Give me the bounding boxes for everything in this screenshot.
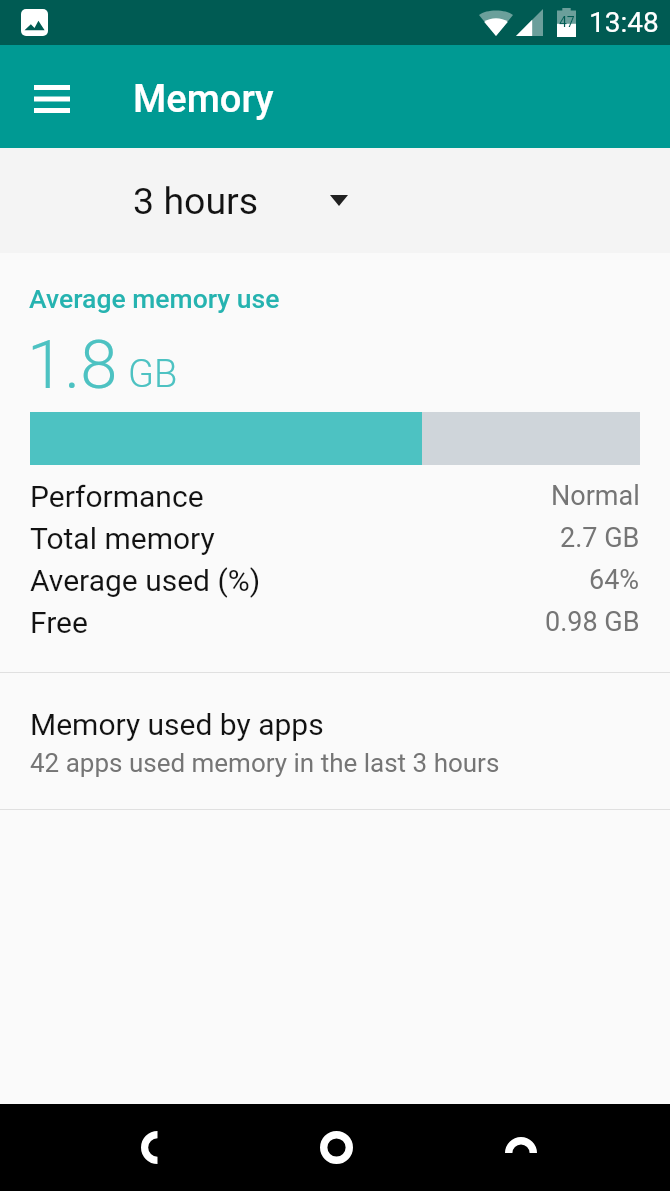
staticText: Normal (551, 480, 640, 512)
staticText: Average memory use (29, 283, 280, 314)
button[interactable]: Memory used by apps (0, 673, 670, 809)
staticText: Performance (30, 479, 204, 514)
staticText: 0.98 GB (545, 606, 640, 638)
staticText: GB (128, 352, 178, 397)
button[interactable]: Home (281, 1104, 391, 1191)
button[interactable]: 3 hours (0, 148, 670, 253)
button[interactable]: Recent apps (466, 1104, 576, 1191)
staticText: 42 apps used memory in the last 3 hours (30, 748, 500, 778)
button[interactable]: Open navigation drawer (24, 71, 80, 127)
staticText: Average used (%) (30, 563, 261, 598)
staticText: Memory used by apps (30, 707, 324, 742)
staticText: 13:48 (589, 6, 659, 39)
staticText: 3 hours (133, 179, 259, 223)
staticText: 64% (589, 564, 640, 596)
staticText: Memory (133, 77, 274, 122)
staticText: Total memory (30, 521, 215, 556)
staticText: Free (30, 605, 88, 640)
button[interactable]: Back (105, 1104, 215, 1191)
staticText: 1.8 (27, 326, 118, 405)
staticText: 47 (559, 14, 575, 30)
staticText: 2.7 GB (560, 522, 640, 554)
